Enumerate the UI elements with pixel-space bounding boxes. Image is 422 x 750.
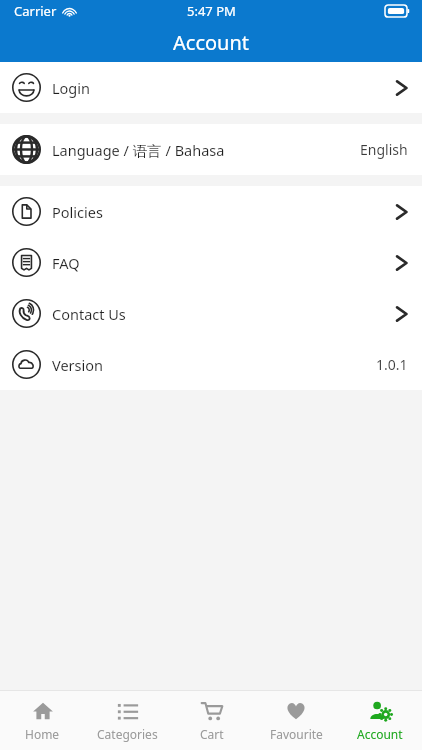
staticText: Account — [173, 29, 250, 56]
button[interactable]: Policies — [0, 186, 422, 237]
staticText: Language / 语言 / Bahasa — [52, 140, 225, 160]
button[interactable]: Account — [338, 691, 422, 750]
button[interactable]: Home — [0, 691, 85, 750]
button[interactable]: FAQ — [0, 237, 422, 288]
staticText: Contact Us — [52, 304, 126, 324]
button[interactable]: Favourite — [254, 691, 338, 750]
staticText: Account — [357, 726, 403, 742]
button[interactable]: Cart — [170, 691, 254, 750]
button[interactable]: Login — [0, 62, 422, 113]
staticText: Favourite — [270, 726, 323, 742]
button[interactable]: Version — [0, 339, 422, 390]
button[interactable]: Contact Us — [0, 288, 422, 339]
staticText: Version — [52, 355, 103, 375]
staticText: 1.0.1 — [376, 355, 408, 374]
button[interactable]: Categories — [85, 691, 170, 750]
staticText: Policies — [52, 202, 103, 222]
staticText: Login — [52, 78, 90, 98]
staticText: FAQ — [52, 253, 80, 273]
staticText: Home — [25, 726, 60, 742]
staticText: Cart — [200, 726, 224, 742]
staticText: 5:47 PM — [187, 2, 236, 20]
staticText: Carrier — [14, 2, 57, 20]
staticText: English — [360, 140, 408, 159]
button[interactable]: Language / 语言 / Bahasa — [0, 124, 422, 175]
staticText: Categories — [97, 726, 158, 742]
